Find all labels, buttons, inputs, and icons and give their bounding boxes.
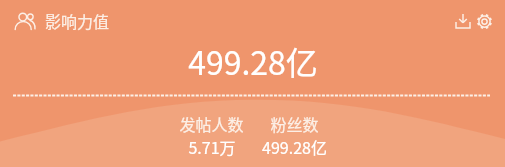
staticText: 499.28亿 <box>188 38 318 84</box>
staticText: 影响力值 <box>45 9 110 32</box>
button[interactable]: 发帖人数 <box>170 112 253 158</box>
staticText: 发帖人数 <box>179 112 244 135</box>
button[interactable]: Download <box>450 8 476 34</box>
staticText: 5.71万 <box>188 135 236 158</box>
staticText: 499.28亿 <box>262 135 327 158</box>
staticText: 粉丝数 <box>270 112 319 135</box>
button[interactable]: 影响力值 <box>14 10 110 33</box>
button[interactable]: 粉丝数 <box>253 112 336 158</box>
button[interactable]: Settings <box>471 8 497 34</box>
